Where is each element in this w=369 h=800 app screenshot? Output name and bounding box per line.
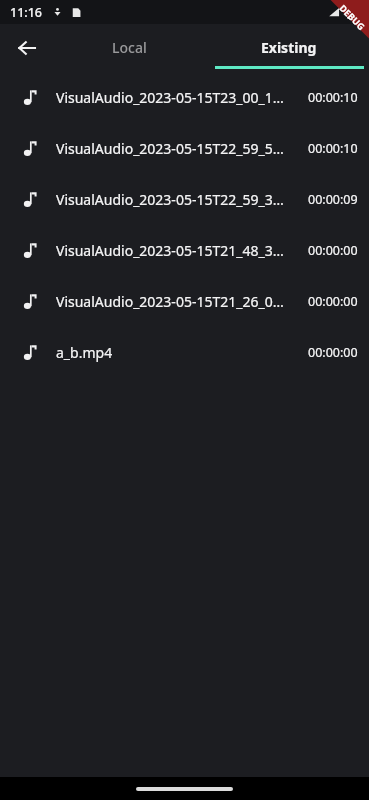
staticText: 00:00:00 [308, 293, 358, 310]
staticText: 11:16 [10, 4, 43, 21]
staticText: Existing [261, 38, 317, 57]
button[interactable]: VisualAudio_2023-05-15T21_26_0… [0, 276, 369, 327]
staticText: VisualAudio_2023-05-15T21_48_3… [56, 241, 300, 260]
staticText: VisualAudio_2023-05-15T21_26_0… [56, 292, 300, 311]
staticText: 00:00:10 [308, 140, 358, 157]
staticText: DEBUG [337, 2, 368, 32]
staticText: 00:00:00 [308, 344, 358, 361]
staticText: 00:00:09 [308, 191, 358, 208]
staticText: VisualAudio_2023-05-15T22_59_3… [56, 190, 300, 209]
staticText: 00:00:10 [308, 89, 358, 106]
button[interactable]: Local [50, 24, 209, 71]
staticText: VisualAudio_2023-05-15T22_59_5… [56, 139, 300, 158]
button[interactable]: a_b.mp4 [0, 327, 369, 378]
staticText: 00:00:00 [308, 242, 358, 259]
button[interactable]: VisualAudio_2023-05-15T22_59_3… [0, 174, 369, 225]
staticText: VisualAudio_2023-05-15T23_00_1… [56, 88, 300, 107]
button[interactable]: Back [6, 27, 48, 69]
button[interactable]: VisualAudio_2023-05-15T23_00_1… [0, 72, 369, 123]
button[interactable]: VisualAudio_2023-05-15T22_59_5… [0, 123, 369, 174]
staticText: a_b.mp4 [56, 343, 300, 362]
button[interactable]: Existing [209, 24, 369, 71]
staticText: Local [112, 38, 147, 57]
button[interactable]: VisualAudio_2023-05-15T21_48_3… [0, 225, 369, 276]
